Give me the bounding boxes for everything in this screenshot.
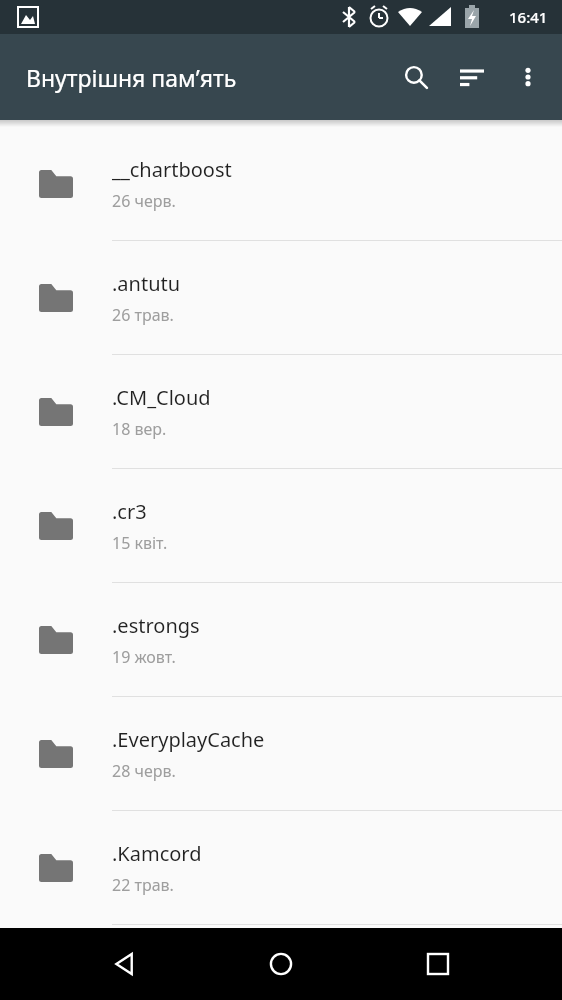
button[interactable]: Home [249, 932, 313, 996]
staticText: 15 квіт. [112, 532, 168, 554]
button[interactable]: __chartboost [0, 127, 562, 240]
staticText: 26 черв. [112, 190, 176, 212]
staticText: .antutu [112, 270, 181, 297]
button[interactable]: .EveryplayCache [0, 697, 562, 810]
staticText: .estrongs [112, 612, 200, 639]
staticText: __chartboost [112, 156, 232, 183]
staticText: .Kamcord [112, 840, 202, 867]
button[interactable]: .cr3 [0, 469, 562, 582]
button[interactable]: .CM_Cloud [0, 355, 562, 468]
staticText: 22 трав. [112, 874, 174, 896]
staticText: 19 жовт. [112, 646, 176, 668]
staticText: .EveryplayCache [112, 726, 265, 753]
button[interactable]: More options [500, 49, 556, 105]
button[interactable]: Sort [444, 49, 500, 105]
button[interactable]: .antutu [0, 241, 562, 354]
staticText: Внутрішня пам’ять [26, 62, 388, 93]
button[interactable]: Recents [406, 932, 470, 996]
button[interactable]: .Kamcord [0, 811, 562, 924]
staticText: 18 вер. [112, 418, 167, 440]
button[interactable]: .estrongs [0, 583, 562, 696]
staticText: 28 черв. [112, 760, 176, 782]
button[interactable]: Search [388, 49, 444, 105]
button[interactable]: Back [93, 932, 157, 996]
staticText: 26 трав. [112, 304, 174, 326]
staticText: 16:41 [509, 7, 548, 27]
staticText: .cr3 [112, 498, 147, 525]
staticText: .CM_Cloud [112, 384, 211, 411]
